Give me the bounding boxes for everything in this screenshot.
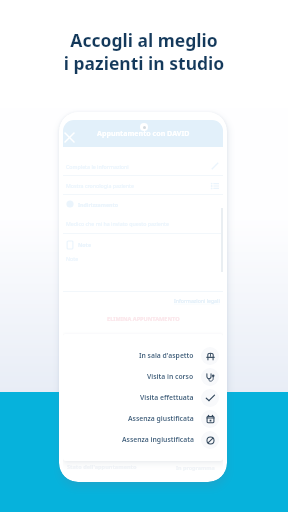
staticText: Visita in corso <box>147 372 194 381</box>
staticText: Completa le informazioni <box>66 163 129 170</box>
button[interactable]: Informazioni legali <box>174 298 223 305</box>
staticText: In programma <box>176 464 215 471</box>
staticText: Note <box>66 255 79 262</box>
staticText: Assenza ingiustificata <box>122 435 194 444</box>
staticText: In sala d'aspetto <box>139 351 194 360</box>
button[interactable]: Assenza giustificata <box>63 408 223 429</box>
button[interactable]: ELIMINA APPUNTAMENTO <box>107 315 180 323</box>
staticText: Stato dell'appuntamento <box>67 463 137 471</box>
staticText: Appuntamento con DAVID <box>97 128 190 138</box>
staticText: Accogli al meglio i pazienti in studio <box>0 28 288 75</box>
button[interactable]: Chiudi <box>63 129 77 145</box>
other: In sala d'aspetto <box>201 347 219 365</box>
other: Assenza giustificata <box>201 410 219 428</box>
staticText: Mostra cronologia paziente <box>66 182 134 189</box>
staticText: Assenza giustificata <box>128 414 194 423</box>
staticText: Note <box>78 241 92 248</box>
other: Visita effettuata <box>201 389 219 407</box>
staticText: Visita effettuata <box>140 393 194 402</box>
button[interactable]: In sala d'aspetto <box>63 345 223 366</box>
staticText: Medico che mi ha inviato questo paziente <box>66 220 169 227</box>
button[interactable]: Visita in corso <box>63 366 223 387</box>
staticText: Indirizzamento <box>78 201 119 208</box>
button[interactable]: Assenza ingiustificata <box>63 429 223 450</box>
other: Visita in corso <box>201 368 219 386</box>
button[interactable]: Visita effettuata <box>63 387 223 408</box>
other: Assenza ingiustificata <box>201 431 219 449</box>
